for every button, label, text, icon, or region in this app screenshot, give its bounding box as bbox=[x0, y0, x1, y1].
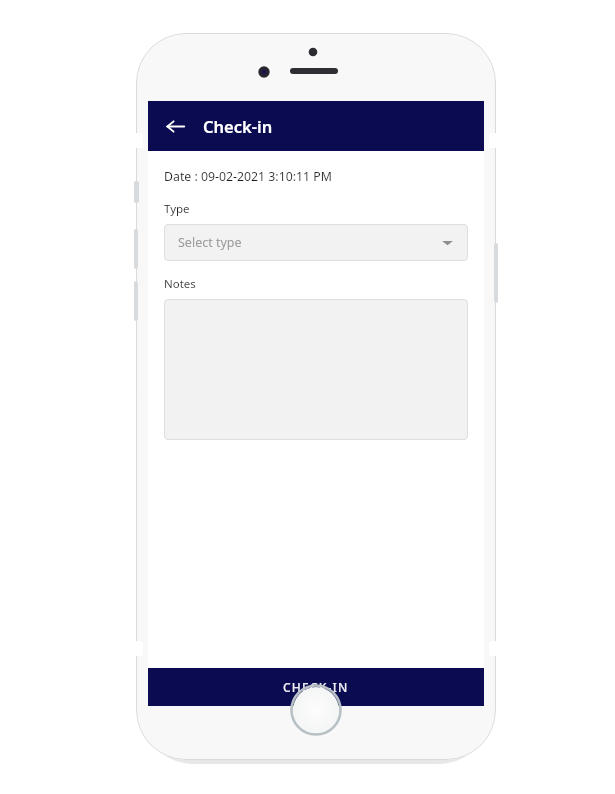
staticText: Notes bbox=[164, 276, 196, 292]
button[interactable]: Home bbox=[290, 684, 342, 736]
staticText: Date : 09-02-2021 3:10:11 PM bbox=[164, 168, 332, 185]
staticText: Type bbox=[164, 201, 190, 217]
staticText: CHECK-IN bbox=[283, 679, 349, 695]
button[interactable]: Select type bbox=[164, 224, 468, 261]
button[interactable]: Back bbox=[148, 101, 484, 151]
staticText: Select type bbox=[178, 234, 242, 251]
button[interactable]: Back bbox=[157, 108, 193, 144]
other: Expand type list bbox=[441, 236, 454, 249]
staticText: Check-in bbox=[203, 115, 273, 137]
button[interactable]: CHECK-IN bbox=[148, 668, 484, 706]
